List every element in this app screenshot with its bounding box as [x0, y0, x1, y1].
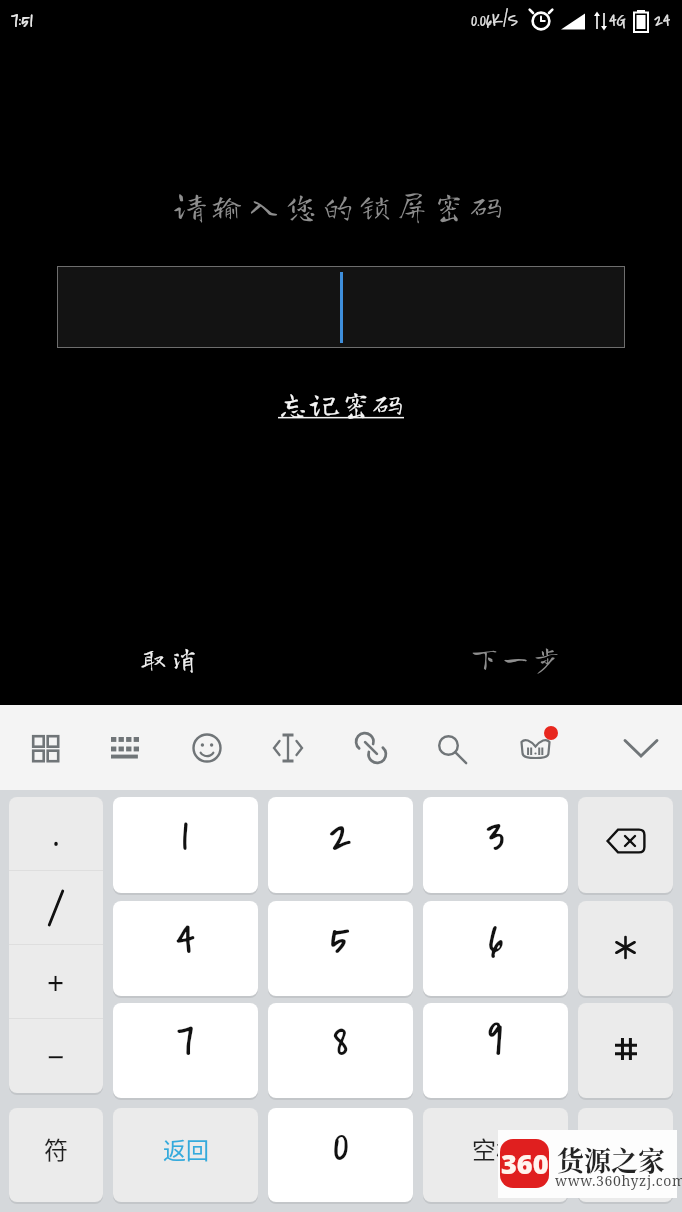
button[interactable]: 4 — [113, 901, 258, 996]
button[interactable]: + — [9, 945, 103, 1019]
staticText: 符 — [44, 1131, 68, 1166]
staticText: 取消 — [140, 645, 202, 672]
button[interactable]: 8 — [268, 1003, 413, 1098]
button[interactable]: 9 — [423, 1003, 568, 1098]
staticText: 下一步 — [471, 645, 564, 672]
button[interactable]: 5 — [268, 901, 413, 996]
staticText: 360 — [501, 1145, 549, 1182]
staticText: − — [47, 1036, 65, 1077]
button[interactable]: Move cursor — [261, 705, 315, 790]
button[interactable]: Emoji — [180, 705, 234, 790]
button[interactable] — [578, 901, 673, 996]
button[interactable] — [57, 266, 625, 348]
staticText: 空格 — [472, 1131, 520, 1166]
button[interactable] — [578, 1003, 673, 1098]
button[interactable] — [578, 797, 673, 893]
staticText: 0.06K/S — [471, 8, 519, 34]
button[interactable]: Keyboard — [98, 705, 152, 790]
button[interactable]: 0 — [268, 1108, 413, 1202]
staticText: 4 — [176, 906, 196, 971]
staticText: www.360hyzj.com — [555, 1171, 682, 1190]
button[interactable]: . — [9, 797, 103, 871]
staticText: 5 — [330, 906, 351, 971]
staticText: 1 — [182, 803, 189, 868]
button[interactable]: 2 — [268, 797, 413, 893]
staticText: . — [52, 814, 61, 855]
button[interactable]: 空格 — [423, 1108, 568, 1202]
button[interactable] — [9, 871, 103, 945]
staticText: 6 — [488, 906, 504, 971]
staticText: 0 — [333, 1113, 349, 1178]
button[interactable]: 返回 — [113, 1108, 258, 1202]
button[interactable]: 3 — [423, 797, 568, 893]
staticText: 3 — [486, 803, 505, 868]
staticText: 8 — [333, 1008, 349, 1073]
button[interactable] — [578, 1108, 673, 1202]
button[interactable]: Promotion — [508, 705, 562, 790]
staticText: 7:51 — [11, 7, 33, 35]
button[interactable]: Apps — [17, 705, 71, 790]
button[interactable]: 取消 — [0, 639, 220, 678]
staticText: 返回 — [163, 1132, 209, 1165]
button[interactable]: 7 — [113, 1003, 258, 1098]
button[interactable]: Hide keyboard — [614, 705, 668, 790]
staticText: 请输入您的锁屏密码 — [174, 190, 508, 222]
button[interactable]: 6 — [423, 901, 568, 996]
button[interactable]: 符 — [9, 1108, 103, 1202]
staticText: 货源之家 — [557, 1140, 665, 1179]
button[interactable]: 下一步 — [453, 639, 682, 678]
button[interactable]: Search — [424, 705, 478, 790]
button[interactable]: − — [9, 1019, 103, 1093]
button[interactable]: 忘记密码 — [278, 389, 404, 419]
staticText: 2 — [329, 803, 352, 868]
staticText: 7 — [177, 1008, 194, 1073]
button[interactable]: 1 — [113, 797, 258, 893]
staticText: + — [47, 962, 65, 1003]
staticText: 24 — [654, 8, 671, 34]
button[interactable]: Clipboard — [344, 705, 398, 790]
staticText: 4G — [609, 8, 626, 34]
staticText: 9 — [488, 1008, 504, 1073]
